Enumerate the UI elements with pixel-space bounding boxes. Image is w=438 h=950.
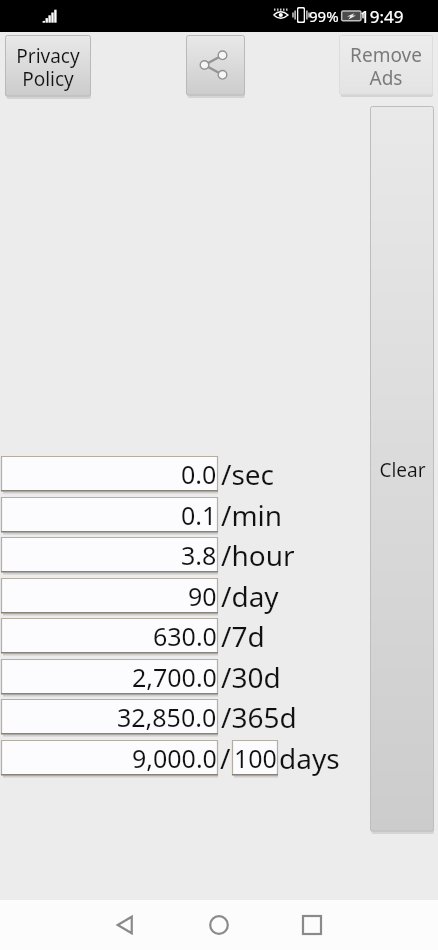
staticText: 630.0 [153,619,217,653]
button[interactable]: Remove Ads [339,35,433,96]
button[interactable]: 0.1 [1,497,218,533]
staticText: 0.1 [181,498,217,532]
staticText: /day [221,577,279,615]
staticText: Remove Ads [350,42,422,90]
button[interactable]: Privacy Policy [5,35,91,98]
staticText: 90 [188,579,217,613]
staticText: 2,700.0 [132,660,217,694]
button[interactable]: Share [186,35,245,97]
staticText: /7d [221,617,265,655]
staticText: 0.0 [181,457,217,491]
staticText: /hour [221,536,295,574]
staticText: /sec [221,455,275,493]
button[interactable]: 9,000.0 [1,740,218,776]
staticText: /30d [221,658,281,696]
button[interactable]: 630.0 [1,618,218,654]
staticText: 9,000.0 [132,741,217,775]
button[interactable]: 100 [232,740,278,776]
staticText: /min [221,496,283,534]
button[interactable]: 32,850.0 [1,699,218,735]
button[interactable]: Home [199,900,239,950]
staticText: / [220,739,231,777]
button[interactable]: Back [106,900,146,950]
button[interactable]: 90 [1,578,218,614]
button[interactable]: 2,700.0 [1,659,218,695]
staticText: /365d [221,698,297,736]
button[interactable]: Recents [292,900,332,950]
button[interactable]: Clear [370,106,434,833]
staticText: 100 [234,741,277,775]
staticText: days [279,739,340,777]
staticText: 99% [309,6,339,26]
staticText: 19:49 [360,5,404,28]
button[interactable]: 0.0 [1,456,218,492]
staticText: Privacy Policy [16,43,80,91]
staticText: Clear [379,457,426,483]
staticText: 32,850.0 [117,700,217,734]
staticText: 3.8 [181,538,217,572]
button[interactable]: 3.8 [1,537,218,573]
